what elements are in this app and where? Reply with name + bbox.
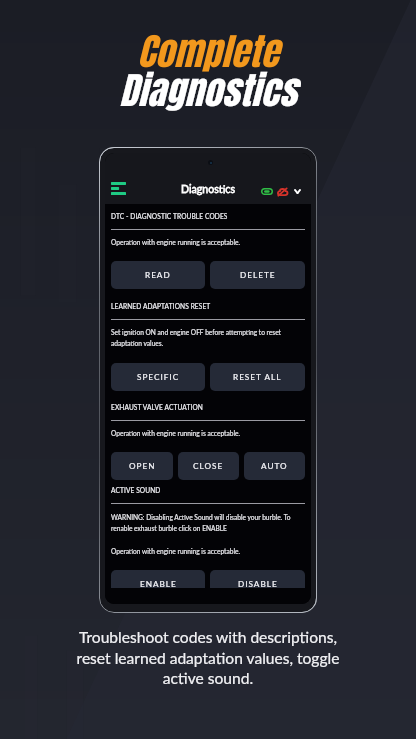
button[interactable]: ENABLE [111,570,205,598]
button[interactable]: Cloud offline [276,186,288,197]
button[interactable]: DISABLE [210,570,305,598]
staticText: ACTIVE SOUND [111,486,161,494]
staticText: OPEN [129,461,156,471]
button[interactable]: CLOSE [178,452,239,480]
staticText: Operation with engine running is accepta… [111,238,240,246]
button[interactable]: Vehicle connected [260,186,274,197]
staticText: DISABLE [238,579,278,589]
staticText: Operation with engine running is accepta… [111,547,240,555]
staticText: DELETE [240,270,276,280]
staticText: SPECIFIC [137,372,180,382]
button[interactable]: AUTO [244,452,305,480]
button[interactable]: READ [111,261,205,289]
staticText: DTC - DIAGNOSTIC TROUBLE CODES [111,212,228,220]
staticText: EXHAUST VALVE ACTUATION [111,403,203,411]
staticText: LEARNED ADAPTATIONS RESET [111,302,211,310]
staticText: Operation with engine running is accepta… [111,429,240,437]
staticText: READ [145,270,171,280]
staticText: Complete [0,23,416,79]
staticText: AUTO [261,461,288,471]
button[interactable]: RESET ALL [210,363,305,391]
button[interactable]: DELETE [210,261,305,289]
staticText: Diagnostics [105,183,311,196]
button[interactable]: SPECIFIC [111,363,205,391]
button[interactable]: OPEN [111,452,173,480]
staticText: Troubleshoot codes with descriptions, re… [0,628,416,687]
staticText: RESET ALL [233,372,282,382]
staticText: Set ignition ON and engine OFF before at… [111,328,305,348]
staticText: CLOSE [193,461,224,471]
button[interactable]: Open navigation menu [111,182,126,195]
button[interactable]: Expand [292,186,303,197]
staticText: WARNING: Disabling Active Sound will dis… [111,513,305,533]
staticText: ENABLE [140,579,177,589]
staticText: Diagnostics [0,62,416,118]
